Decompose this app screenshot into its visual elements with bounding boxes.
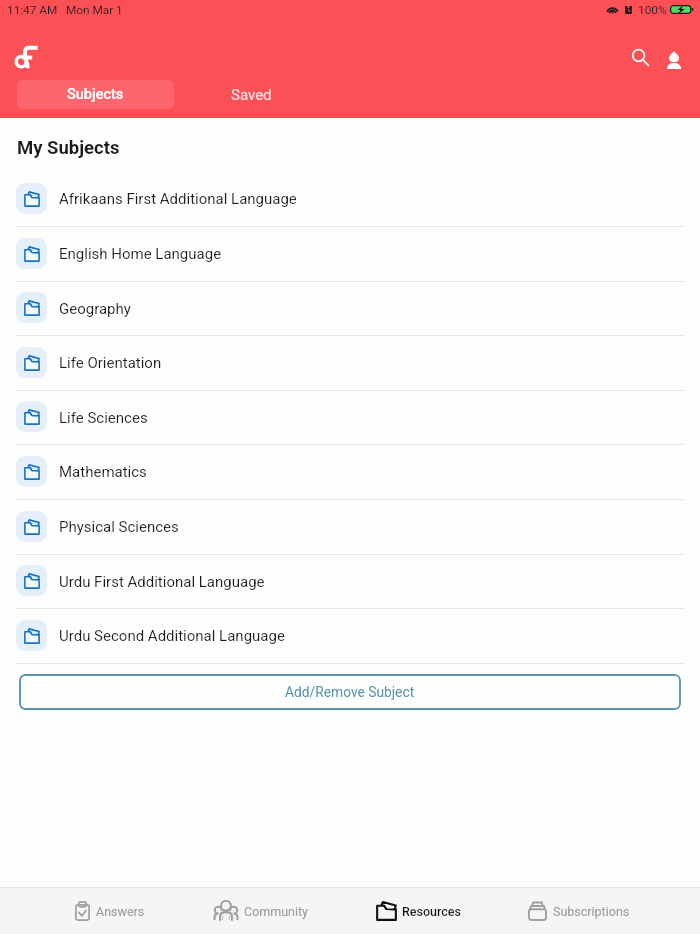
button[interactable]: Physical Sciences	[0, 500, 700, 555]
staticText: Resources	[402, 904, 461, 919]
staticText: English Home Language	[59, 245, 222, 263]
staticText: Urdu Second Additional Language	[59, 627, 285, 645]
button[interactable]: Search	[626, 43, 654, 71]
button[interactable]: English Home Language	[0, 227, 700, 282]
button[interactable]: Urdu Second Additional Language	[0, 609, 700, 664]
staticText: Saved	[231, 86, 272, 104]
staticText: Afrikaans First Additional Language	[59, 190, 297, 208]
staticText: Community	[244, 904, 309, 919]
staticText: Mathematics	[59, 463, 147, 481]
staticText: My Subjects	[17, 137, 120, 159]
staticText: Add/Remove Subject	[285, 684, 415, 700]
button[interactable]: Subjects	[17, 80, 174, 109]
button[interactable]: Add/Remove Subject	[19, 674, 681, 710]
button[interactable]: Geography	[0, 282, 700, 336]
button[interactable]: Community	[214, 888, 309, 934]
staticText: 100%	[638, 3, 667, 17]
staticText: Urdu First Additional Language	[59, 573, 265, 591]
button[interactable]: Saved	[174, 80, 329, 109]
button[interactable]: Urdu First Additional Language	[0, 555, 700, 609]
staticText: Life Orientation	[59, 354, 162, 372]
button[interactable]: Answers	[75, 888, 145, 934]
staticText: Mon Mar 1	[66, 3, 123, 17]
staticText: Geography	[59, 300, 131, 318]
button[interactable]: Subscriptions	[528, 888, 630, 934]
staticText: Answers	[96, 904, 145, 919]
staticText: Subscriptions	[553, 904, 630, 919]
button[interactable]: Life Sciences	[0, 391, 700, 445]
staticText: Subjects	[67, 86, 124, 103]
button[interactable]: Account	[660, 46, 688, 74]
staticText: Life Sciences	[59, 409, 148, 427]
button[interactable]: Resources	[376, 888, 461, 934]
button[interactable]: Mathematics	[0, 445, 700, 500]
button[interactable]: Afrikaans First Additional Language	[0, 172, 700, 227]
button[interactable]: Life Orientation	[0, 336, 700, 391]
staticText: 11:47 AM	[7, 3, 58, 17]
staticText: Physical Sciences	[59, 518, 179, 536]
